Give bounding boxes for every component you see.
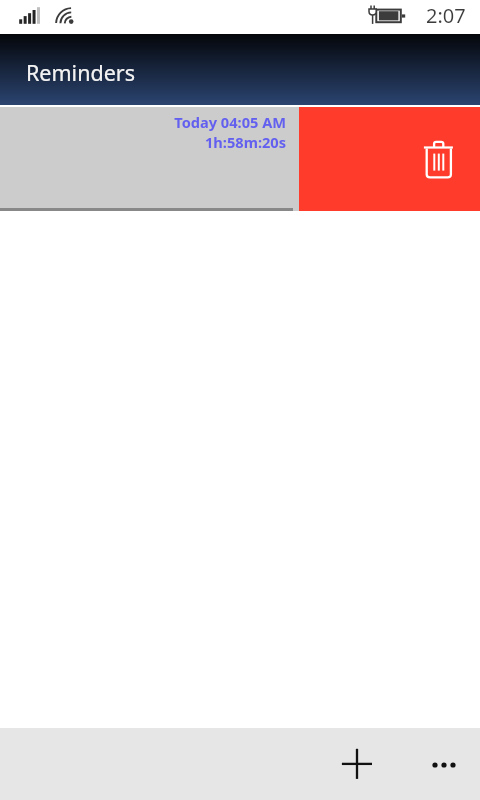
staticText: Reminders [26,58,135,87]
button[interactable]: Delete reminder [299,107,480,211]
staticText: 2:07 [426,2,466,29]
button[interactable]: Add reminder [329,736,385,792]
staticText: 1h:58m:20s [0,132,286,152]
button[interactable]: More options [416,736,472,792]
button[interactable]: Today 04:05 AM [0,107,299,211]
staticText: Today 04:05 AM [0,112,286,132]
